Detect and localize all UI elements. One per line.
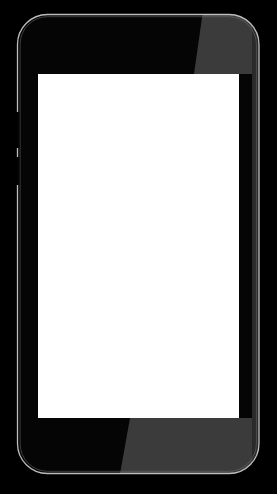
button[interactable]: Smartphone device illustration — [0, 0, 277, 494]
